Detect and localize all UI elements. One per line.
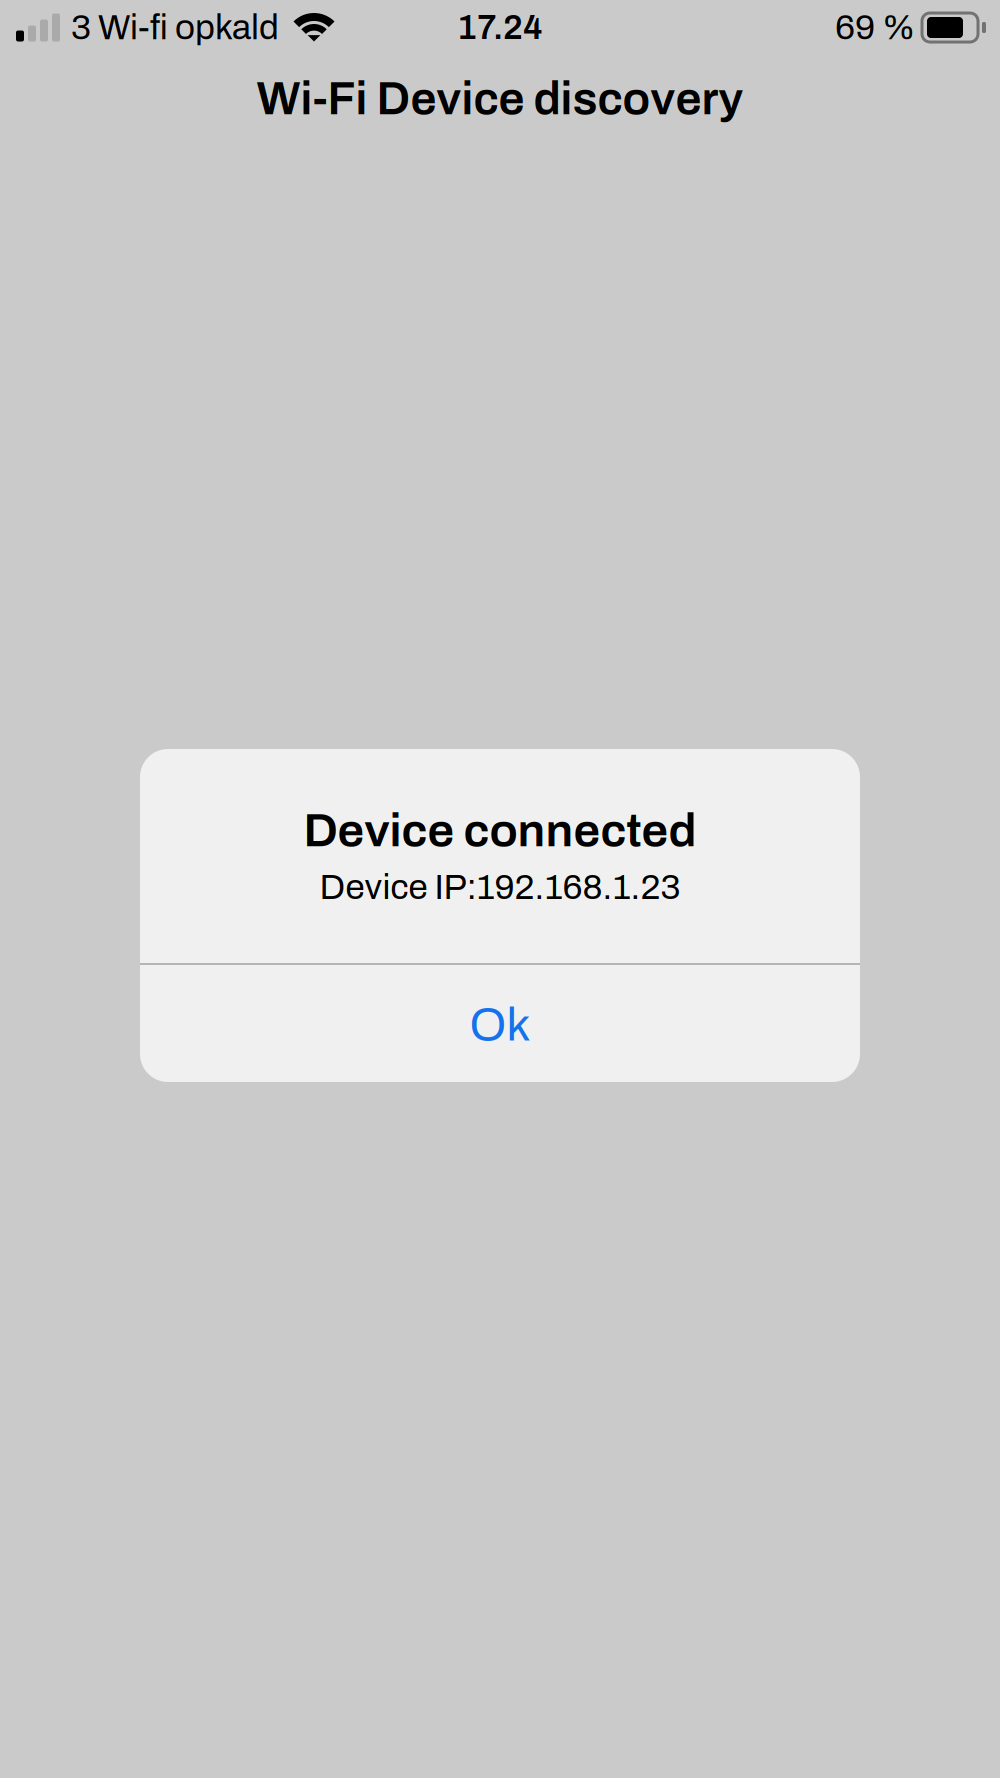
staticText: 17.24 xyxy=(457,9,543,46)
staticText: Wi-Fi Device discovery xyxy=(256,74,743,124)
staticText: 69 % xyxy=(835,8,915,47)
staticText: 3 Wi-fi opkald xyxy=(71,8,279,47)
staticText: Device connected xyxy=(303,805,696,856)
staticText: Device IP:192.168.1.23 xyxy=(319,868,680,906)
button[interactable]: Ok xyxy=(140,965,860,1083)
staticText: Ok xyxy=(469,1000,530,1050)
